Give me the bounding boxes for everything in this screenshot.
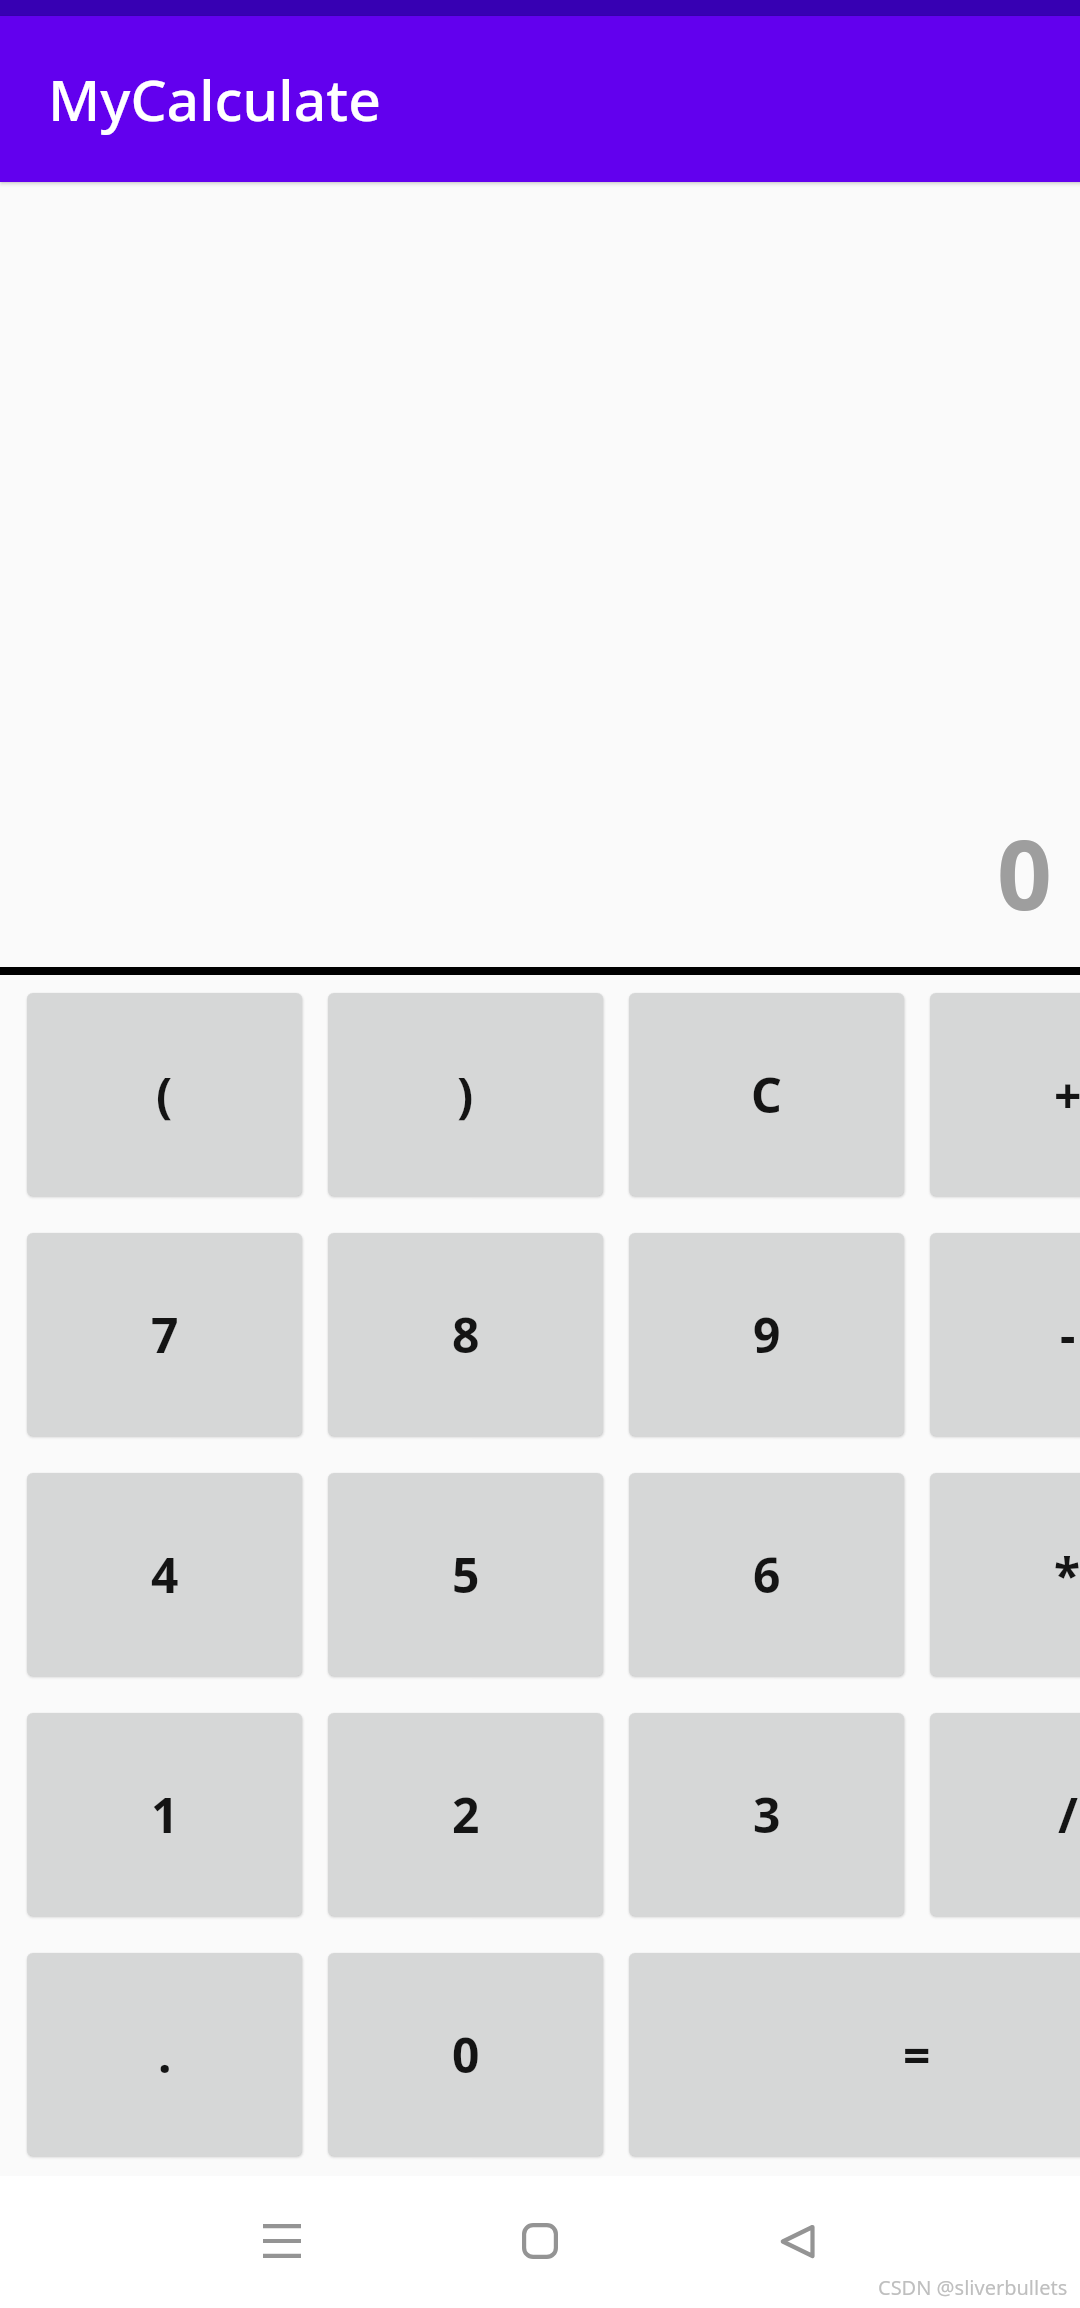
staticText: - bbox=[1060, 1302, 1076, 1367]
staticText: C bbox=[751, 1062, 782, 1127]
button[interactable]: ) bbox=[328, 993, 603, 1196]
staticText: ( bbox=[156, 1062, 173, 1127]
staticText: 0 bbox=[452, 2022, 480, 2087]
staticText: 8 bbox=[452, 1302, 480, 1367]
staticText: 1 bbox=[151, 1782, 179, 1847]
staticText: MyCalculate bbox=[48, 60, 381, 138]
button[interactable]: 3 bbox=[629, 1713, 904, 1916]
button[interactable]: Back bbox=[752, 2196, 842, 2286]
staticText: = bbox=[903, 2022, 931, 2087]
staticText: + bbox=[1054, 1062, 1080, 1127]
button[interactable]: . bbox=[27, 1953, 302, 2156]
button[interactable]: = bbox=[629, 1953, 1080, 2156]
button[interactable]: ( bbox=[27, 993, 302, 1196]
staticText: . bbox=[158, 2022, 172, 2087]
staticText: 7 bbox=[151, 1302, 179, 1367]
button[interactable]: 9 bbox=[629, 1233, 904, 1436]
staticText: 4 bbox=[151, 1542, 179, 1607]
staticText: 3 bbox=[753, 1782, 781, 1847]
button[interactable]: * bbox=[930, 1473, 1080, 1676]
button[interactable]: 8 bbox=[328, 1233, 603, 1436]
staticText: 5 bbox=[452, 1542, 480, 1607]
button[interactable]: Recent apps bbox=[237, 2196, 327, 2286]
button[interactable]: - bbox=[930, 1233, 1080, 1436]
button[interactable]: 4 bbox=[27, 1473, 302, 1676]
staticText: * bbox=[1054, 1542, 1080, 1607]
button[interactable]: 0 bbox=[328, 1953, 603, 2156]
button[interactable]: 6 bbox=[629, 1473, 904, 1676]
button[interactable]: C bbox=[629, 993, 904, 1196]
button[interactable]: 2 bbox=[328, 1713, 603, 1916]
staticText: 2 bbox=[452, 1782, 480, 1847]
button[interactable]: 1 bbox=[27, 1713, 302, 1916]
staticText: 9 bbox=[753, 1302, 781, 1367]
staticText: 6 bbox=[753, 1542, 781, 1607]
button[interactable]: + bbox=[930, 993, 1080, 1196]
staticText: ) bbox=[457, 1062, 474, 1127]
button[interactable]: / bbox=[930, 1713, 1080, 1916]
staticText: / bbox=[1058, 1782, 1078, 1847]
button[interactable]: 5 bbox=[328, 1473, 603, 1676]
staticText: CSDN @sliverbullets bbox=[878, 2274, 1068, 2301]
staticText: 0 bbox=[997, 807, 1052, 938]
button[interactable]: 7 bbox=[27, 1233, 302, 1436]
button[interactable]: Home bbox=[495, 2196, 585, 2286]
